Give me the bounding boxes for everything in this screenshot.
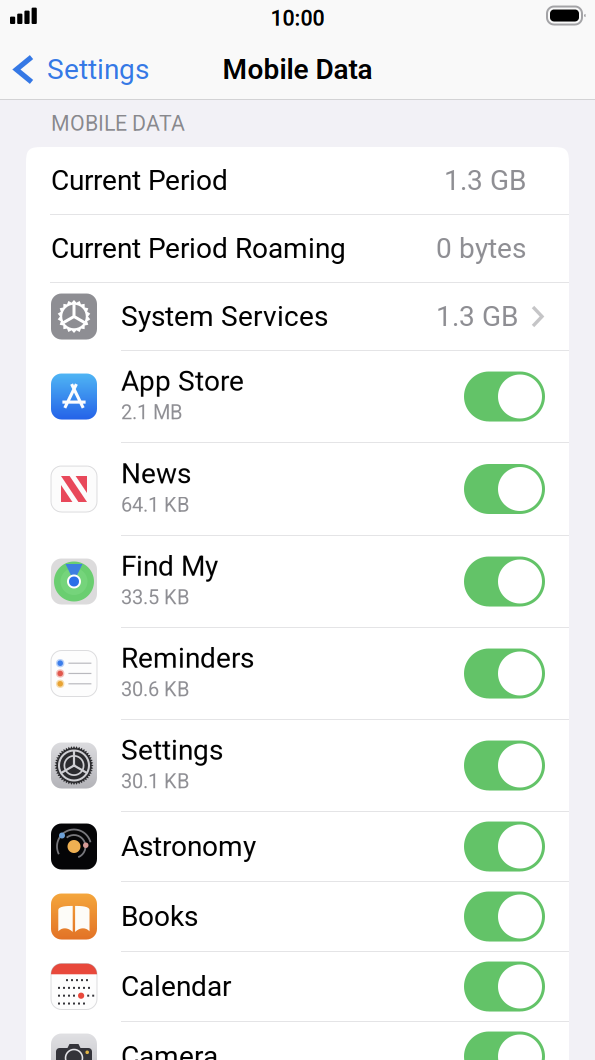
- staticText: 30.1 KB: [121, 770, 189, 793]
- staticText: Books: [121, 900, 198, 933]
- button[interactable]: System Services: [26, 283, 569, 350]
- button[interactable]: Camera: [26, 1022, 569, 1060]
- staticText: Astronomy: [121, 830, 256, 863]
- button[interactable]: Current Period: [26, 147, 569, 214]
- button[interactable]: App Store: [26, 351, 569, 442]
- button[interactable]: Astronomy: [26, 812, 569, 881]
- staticText: Settings: [47, 53, 149, 86]
- staticText: Camera: [121, 1040, 218, 1060]
- button[interactable]: News: [26, 443, 569, 535]
- staticText: Current Period Roaming: [51, 232, 346, 265]
- button[interactable]: Reminders: [26, 628, 569, 719]
- staticText: 0 bytes: [436, 232, 526, 265]
- staticText: Find My: [121, 550, 218, 583]
- button[interactable]: Settings: [26, 720, 569, 811]
- staticText: 33.5 KB: [121, 586, 189, 609]
- staticText: App Store: [121, 365, 244, 398]
- staticText: Current Period: [51, 164, 228, 197]
- staticText: 1.3 GB: [436, 300, 518, 333]
- staticText: 64.1 KB: [121, 493, 189, 517]
- staticText: MOBILE DATA: [51, 111, 185, 136]
- staticText: Settings: [121, 734, 223, 767]
- staticText: 1.3 GB: [444, 164, 526, 197]
- button[interactable]: Current Period Roaming: [26, 215, 569, 282]
- staticText: 10:00: [270, 6, 324, 31]
- button[interactable]: Find My: [26, 536, 569, 627]
- button[interactable]: Books: [26, 882, 569, 951]
- staticText: 30.6 KB: [121, 678, 189, 701]
- button[interactable]: Calendar: [26, 952, 569, 1021]
- staticText: Reminders: [121, 642, 254, 675]
- staticText: Mobile Data: [222, 53, 372, 86]
- staticText: Calendar: [121, 970, 231, 1003]
- staticText: System Services: [121, 300, 328, 333]
- staticText: News: [121, 457, 191, 490]
- button[interactable]: Settings: [0, 40, 159, 99]
- staticText: 2.1 MB: [121, 401, 182, 424]
